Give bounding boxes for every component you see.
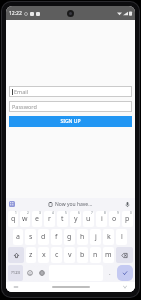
staticText: a [16, 232, 20, 242]
staticText: z [29, 250, 33, 260]
button[interactable]: 3 [32, 211, 42, 227]
button[interactable]: Now you have… [48, 201, 93, 208]
button[interactable]: Emoji [25, 265, 35, 281]
staticText: 6 [78, 211, 80, 215]
button[interactable]: s [25, 229, 36, 245]
staticText: k [107, 232, 111, 242]
button[interactable]: Back [13, 284, 19, 290]
staticText: q [11, 214, 16, 224]
button[interactable]: d [38, 229, 49, 245]
button[interactable]: h [77, 229, 88, 245]
staticText: b [80, 250, 85, 260]
button[interactable]: 7 [83, 211, 94, 227]
staticText: c [55, 250, 59, 260]
staticText: w [22, 214, 28, 224]
staticText: j [95, 232, 97, 242]
button[interactable]: 4 [44, 211, 55, 227]
button[interactable]: Home [52, 286, 90, 288]
button[interactable]: Enter [117, 265, 133, 281]
staticText: e [35, 214, 39, 224]
button[interactable]: Keyboard toolbar [9, 201, 15, 207]
button[interactable]: Hide keyboard [122, 284, 128, 290]
staticText: 7 [91, 211, 93, 215]
staticText: r [48, 214, 51, 224]
button[interactable]: n [90, 247, 101, 263]
staticText: 4 [52, 211, 54, 215]
button[interactable]: 6 [70, 211, 81, 227]
button[interactable]: x [38, 247, 49, 263]
button[interactable]: j [90, 229, 101, 245]
button[interactable]: a [13, 229, 23, 245]
staticText: g [67, 232, 72, 242]
button[interactable]: v [64, 247, 75, 263]
staticText: y [74, 214, 78, 224]
staticText: o [112, 214, 117, 224]
staticText: ?123 [11, 270, 21, 276]
button[interactable]: SIGN UP [9, 116, 132, 127]
staticText: Password [12, 103, 37, 110]
button[interactable]: l [116, 229, 127, 245]
button[interactable]: 1 [8, 211, 18, 227]
button[interactable]: Email [9, 86, 132, 97]
staticText: l [121, 232, 123, 242]
button[interactable]: b [77, 247, 88, 263]
button[interactable]: Change language [37, 265, 47, 281]
button[interactable]: Backspace [116, 247, 133, 263]
staticText: i [101, 214, 103, 224]
staticText: s [29, 232, 33, 242]
button[interactable]: 9 [109, 211, 120, 227]
staticText: Now you have… [55, 201, 93, 208]
button[interactable]: Shift [8, 247, 24, 263]
staticText: f [55, 232, 58, 242]
button[interactable]: c [51, 247, 62, 263]
staticText: d [41, 232, 46, 242]
button[interactable]: 5 [57, 211, 68, 227]
staticText: x [42, 250, 46, 260]
staticText: h [80, 232, 85, 242]
staticText: t [61, 214, 64, 224]
staticText: v [68, 250, 72, 260]
button[interactable]: z [26, 247, 36, 263]
staticText: 5 [65, 211, 67, 215]
staticText: . [109, 269, 111, 277]
staticText: m [105, 250, 112, 260]
button[interactable]: g [64, 229, 75, 245]
button[interactable]: Password [9, 101, 132, 112]
button[interactable]: Voice input [124, 201, 131, 208]
button[interactable]: m [103, 247, 114, 263]
staticText: 3 [39, 211, 41, 215]
staticText: 2 [27, 211, 29, 215]
button[interactable]: f [51, 229, 62, 245]
staticText: 1 [15, 211, 17, 215]
staticText: 0 [130, 211, 132, 215]
staticText: 8 [104, 211, 106, 215]
staticText: u [86, 214, 91, 224]
staticText: 9 [117, 211, 119, 215]
button[interactable]: ?123 [8, 265, 23, 281]
button[interactable]: 0 [122, 211, 133, 227]
staticText: p [125, 214, 130, 224]
button[interactable]: k [103, 229, 114, 245]
staticText: 12:22 [9, 10, 22, 17]
button[interactable]: . [105, 265, 115, 281]
button[interactable]: 8 [96, 211, 107, 227]
button[interactable]: 2 [20, 211, 30, 227]
staticText: SIGN UP [60, 118, 81, 125]
staticText: n [93, 250, 98, 260]
staticText: Email [14, 88, 29, 95]
